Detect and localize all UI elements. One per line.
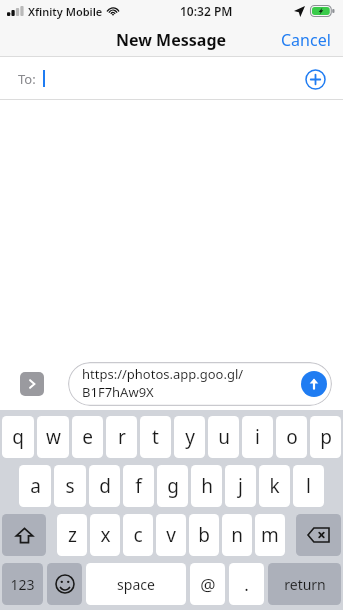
button[interactable]: d xyxy=(89,465,120,507)
button[interactable]: 123 xyxy=(2,563,43,605)
button[interactable]: Shift xyxy=(2,514,46,556)
staticText: t xyxy=(152,424,159,450)
staticText: g xyxy=(167,473,179,499)
staticText: a xyxy=(30,473,41,499)
button[interactable]: z xyxy=(57,514,87,556)
staticText: s xyxy=(65,473,75,499)
button[interactable]: Expand app drawer xyxy=(20,372,44,396)
staticText: u xyxy=(218,424,230,450)
staticText: y xyxy=(185,424,195,450)
button[interactable]: f xyxy=(123,465,154,507)
button[interactable]: k xyxy=(259,465,290,507)
button[interactable]: Backspace xyxy=(296,514,341,556)
staticText: To: xyxy=(18,70,36,88)
button[interactable]: n xyxy=(222,514,252,556)
staticText: q xyxy=(12,424,24,450)
button[interactable]: a xyxy=(19,465,51,507)
button[interactable]: p xyxy=(310,416,341,458)
button[interactable]: https://photos.app.goo.gl/ xyxy=(68,362,332,406)
staticText: 10:32 PM xyxy=(180,3,233,19)
staticText: o xyxy=(286,424,298,450)
staticText: 123 xyxy=(10,575,35,594)
button[interactable]: i xyxy=(242,416,273,458)
button[interactable]: e xyxy=(72,416,103,458)
button[interactable]: u xyxy=(208,416,239,458)
staticText: x xyxy=(100,522,111,548)
staticText: @ xyxy=(200,573,216,596)
staticText: k xyxy=(269,473,280,499)
staticText: w xyxy=(46,424,61,450)
button[interactable]: @ xyxy=(190,563,225,605)
button[interactable]: c xyxy=(123,514,153,556)
button[interactable]: r xyxy=(106,416,137,458)
staticText: New Message xyxy=(116,29,227,51)
staticText: z xyxy=(68,522,77,548)
staticText: b xyxy=(198,522,210,548)
button[interactable]: space xyxy=(86,563,186,605)
button[interactable]: . xyxy=(229,563,264,605)
staticText: j xyxy=(238,473,243,499)
staticText: Xfinity Mobile xyxy=(28,4,103,19)
staticText: c xyxy=(133,522,143,548)
button[interactable]: h xyxy=(191,465,222,507)
staticText: space xyxy=(117,575,155,594)
staticText: m xyxy=(261,522,279,548)
staticText: n xyxy=(231,522,243,548)
button[interactable]: t xyxy=(140,416,171,458)
button[interactable]: v xyxy=(156,514,186,556)
staticText: h xyxy=(201,473,213,499)
button[interactable]: m xyxy=(255,514,285,556)
staticText: r xyxy=(118,424,126,450)
staticText: B1F7hAw9X xyxy=(82,383,154,401)
button[interactable]: j xyxy=(225,465,256,507)
staticText: i xyxy=(255,424,260,450)
button[interactable]: Emoji keyboard xyxy=(47,563,82,605)
staticText: v xyxy=(166,522,176,548)
staticText: Cancel xyxy=(281,29,331,50)
staticText: e xyxy=(82,424,93,450)
button[interactable]: Add contact xyxy=(300,64,330,94)
button[interactable]: q xyxy=(2,416,34,458)
button[interactable]: b xyxy=(189,514,219,556)
button[interactable]: Cancel xyxy=(269,22,343,57)
staticText: . xyxy=(244,573,249,596)
button[interactable]: y xyxy=(174,416,205,458)
button[interactable]: g xyxy=(157,465,188,507)
staticText: https://photos.app.goo.gl/ xyxy=(82,365,244,383)
button[interactable]: s xyxy=(54,465,86,507)
button[interactable]: o xyxy=(276,416,307,458)
button[interactable]: w xyxy=(37,416,69,458)
staticText: f xyxy=(135,473,142,499)
staticText: return xyxy=(284,575,326,594)
button[interactable]: x xyxy=(90,514,120,556)
button[interactable]: Send xyxy=(301,371,327,397)
staticText: p xyxy=(320,424,332,450)
staticText: d xyxy=(99,473,111,499)
staticText: l xyxy=(306,473,311,499)
button[interactable]: return xyxy=(268,563,341,605)
button[interactable]: l xyxy=(293,465,324,507)
